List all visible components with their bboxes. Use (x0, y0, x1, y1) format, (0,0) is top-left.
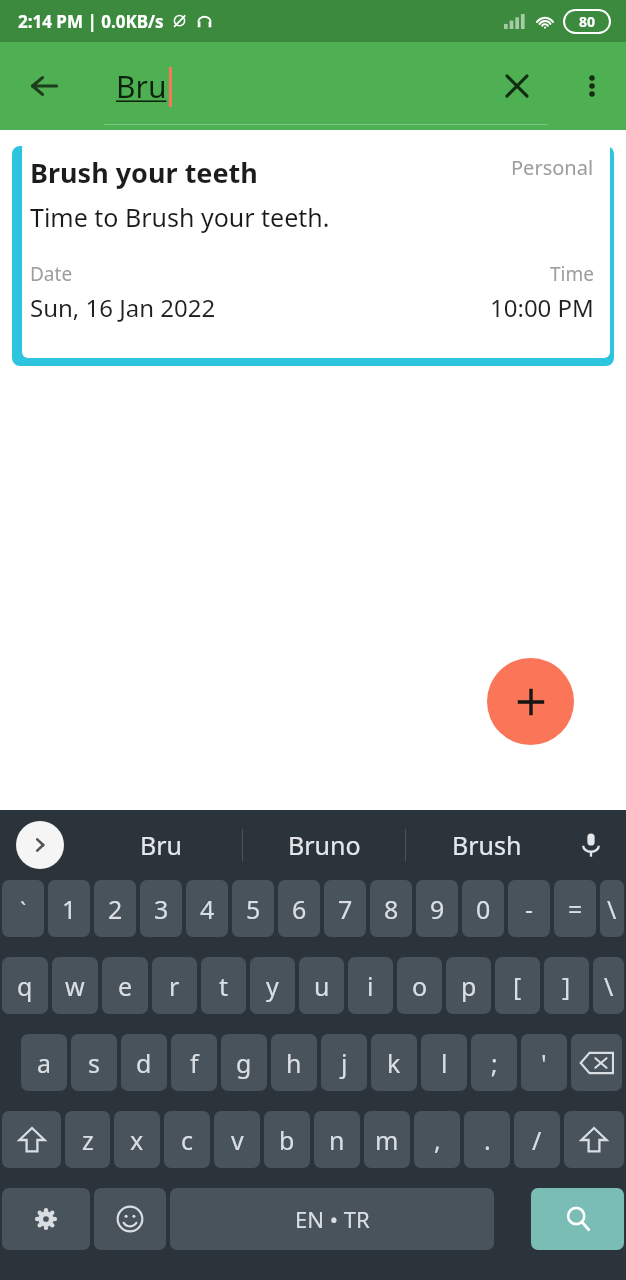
staticText: Brush your teeth (30, 154, 258, 191)
button[interactable]: More options (564, 58, 620, 114)
staticText: r (169, 969, 180, 1003)
button[interactable]: k (371, 1034, 417, 1091)
button[interactable]: , (414, 1111, 460, 1168)
button[interactable]: 6 (278, 880, 320, 937)
staticText: x (130, 1123, 144, 1157)
button[interactable]: Back (12, 54, 76, 118)
staticText: [ (513, 969, 522, 1003)
button[interactable]: n (314, 1111, 360, 1168)
staticText: ' (541, 1046, 547, 1080)
button[interactable]: / (514, 1111, 560, 1168)
staticText: Date (30, 261, 73, 287)
staticText: m (375, 1123, 399, 1157)
button[interactable]: y (250, 957, 295, 1014)
button[interactable]: q (2, 957, 48, 1014)
staticText: = (568, 892, 583, 926)
staticText: 2:14 PM | 0.0KB/s (18, 10, 164, 33)
staticText: 0 (476, 892, 491, 926)
button[interactable]: z (65, 1111, 110, 1168)
button[interactable]: ; (471, 1034, 517, 1091)
button[interactable]: o (397, 957, 442, 1014)
button[interactable]: a (21, 1034, 67, 1091)
button[interactable]: Add reminder (487, 658, 574, 745)
button[interactable]: c (164, 1111, 210, 1168)
button[interactable]: 4 (186, 880, 228, 937)
staticText: 2 (108, 892, 123, 926)
button[interactable]: Search (531, 1188, 624, 1250)
staticText: \ (604, 969, 614, 1003)
button[interactable]: x (114, 1111, 160, 1168)
staticText: y (266, 969, 279, 1003)
staticText: h (286, 1046, 302, 1080)
button[interactable]: \ (593, 957, 624, 1014)
button[interactable]: Emoji (94, 1188, 166, 1250)
button[interactable]: i (348, 957, 393, 1014)
button[interactable]: 2 (94, 880, 136, 937)
button[interactable]: = (554, 880, 596, 937)
button[interactable]: Voice input (568, 822, 614, 868)
button[interactable]: u (299, 957, 344, 1014)
staticText: p (461, 969, 477, 1003)
button[interactable]: 7 (324, 880, 366, 937)
button[interactable]: Brush (406, 810, 568, 880)
staticText: \ (607, 892, 617, 926)
button[interactable]: Settings (2, 1188, 90, 1250)
button[interactable]: Shift (564, 1111, 624, 1168)
button[interactable]: 0 (462, 880, 504, 937)
button[interactable]: Clear (489, 58, 545, 114)
staticText: Bru (116, 66, 167, 107)
staticText: Brush (452, 828, 522, 862)
button[interactable]: Backspace (571, 1034, 622, 1091)
staticText: u (314, 969, 330, 1003)
staticText: 80 (579, 12, 596, 31)
button[interactable]: 9 (416, 880, 458, 937)
button[interactable]: w (52, 957, 98, 1014)
button[interactable]: ` (2, 880, 44, 937)
button[interactable]: d (121, 1034, 167, 1091)
staticText: Time (550, 261, 594, 287)
button[interactable]: j (321, 1034, 367, 1091)
button[interactable]: Personal (22, 142, 610, 358)
button[interactable]: m (364, 1111, 410, 1168)
button[interactable]: p (446, 957, 491, 1014)
staticText: 3 (154, 892, 169, 926)
button[interactable]: t (201, 957, 246, 1014)
button[interactable]: s (71, 1034, 117, 1091)
button[interactable]: ] (544, 957, 589, 1014)
staticText: q (17, 969, 33, 1003)
button[interactable]: Bru (80, 810, 242, 880)
button[interactable]: h (271, 1034, 317, 1091)
button[interactable]: v (214, 1111, 260, 1168)
button[interactable]: f (171, 1034, 217, 1091)
button[interactable]: g (221, 1034, 267, 1091)
staticText: - (525, 892, 534, 926)
button[interactable]: 3 (140, 880, 182, 937)
staticText: l (441, 1046, 448, 1080)
button[interactable]: 8 (370, 880, 412, 937)
button[interactable]: - (508, 880, 550, 937)
button[interactable]: Bruno (243, 810, 405, 880)
button[interactable]: Expand toolbar (16, 821, 64, 869)
staticText: n (329, 1123, 345, 1157)
staticText: 9 (430, 892, 445, 926)
button[interactable]: EN • TR (170, 1188, 494, 1250)
button[interactable]: . (464, 1111, 510, 1168)
button[interactable]: e (102, 957, 148, 1014)
button[interactable]: 5 (232, 880, 274, 937)
button[interactable]: Shift (2, 1111, 61, 1168)
staticText: ; (491, 1046, 498, 1080)
staticText: f (190, 1046, 199, 1080)
button[interactable]: b (264, 1111, 310, 1168)
staticText: / (532, 1123, 542, 1157)
button[interactable]: [ (495, 957, 540, 1014)
button[interactable]: 1 (48, 880, 90, 937)
staticText: 10:00 PM (490, 291, 594, 324)
staticText: b (279, 1123, 295, 1157)
button[interactable]: l (421, 1034, 467, 1091)
button[interactable]: \ (600, 880, 624, 937)
staticText: 7 (338, 892, 353, 926)
button[interactable]: r (152, 957, 197, 1014)
staticText: j (341, 1046, 348, 1080)
button[interactable]: ' (521, 1034, 567, 1091)
staticText: g (236, 1046, 252, 1080)
